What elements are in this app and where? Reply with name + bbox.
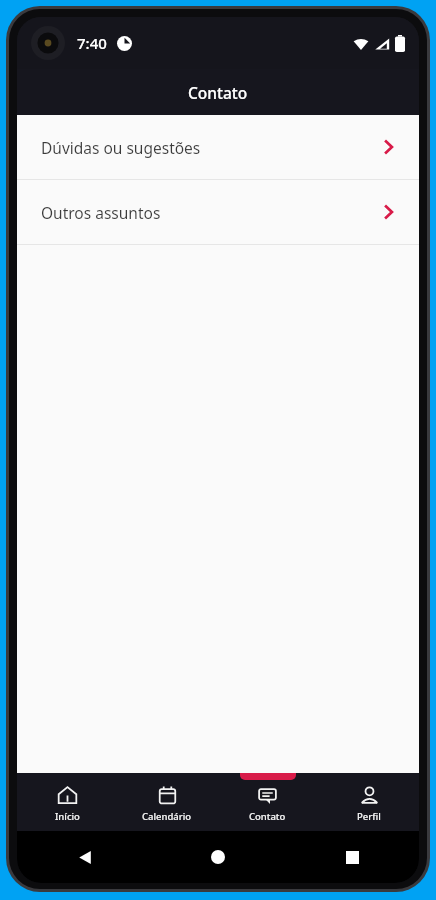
button[interactable]: Início bbox=[17, 773, 117, 831]
button[interactable]: Dúvidas ou sugestões bbox=[17, 115, 419, 179]
button[interactable]: Contato bbox=[217, 773, 318, 831]
staticText: Outros assuntos bbox=[41, 202, 161, 223]
staticText: Dúvidas ou sugestões bbox=[41, 137, 201, 158]
staticText: 7:40 bbox=[77, 33, 107, 53]
staticText: Início bbox=[55, 810, 80, 823]
other: Back bbox=[77, 850, 92, 865]
other: Home bbox=[211, 850, 225, 864]
button[interactable]: Outros assuntos bbox=[17, 180, 419, 244]
button[interactable]: Calendário bbox=[117, 773, 217, 831]
staticText: Contato bbox=[188, 82, 248, 103]
staticText: Contato bbox=[249, 810, 286, 823]
staticText: Perfil bbox=[357, 810, 381, 823]
button[interactable]: Perfil bbox=[318, 773, 419, 831]
staticText: Calendário bbox=[142, 810, 192, 823]
